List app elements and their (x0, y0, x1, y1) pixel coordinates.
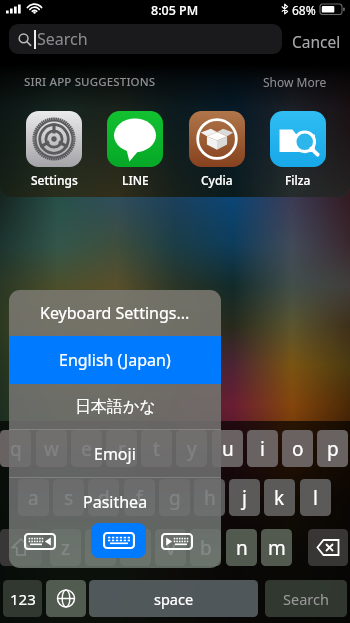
staticText: b (200, 535, 212, 561)
staticText: l (313, 485, 318, 511)
staticText: 68% (292, 2, 316, 18)
staticText: p (327, 436, 339, 462)
button[interactable]: Show More (263, 74, 327, 90)
button[interactable]: q (0, 430, 31, 467)
staticText: f (136, 485, 143, 511)
staticText: g (169, 485, 181, 511)
staticText: Cydia (201, 172, 233, 188)
staticText: i (260, 436, 265, 462)
staticText: Filza (285, 172, 311, 188)
staticText: Settings (31, 172, 78, 188)
staticText: n (236, 535, 248, 561)
button[interactable]: space (89, 580, 258, 617)
button[interactable]: e (71, 430, 102, 467)
button[interactable]: 日本語かな (9, 384, 221, 429)
staticText: Emoji (94, 443, 136, 465)
button[interactable]: English (Japan) (9, 336, 221, 384)
staticText: SIRI APP SUGGESTIONS (24, 74, 156, 90)
button[interactable]: Shift (0, 529, 42, 566)
staticText: e (81, 436, 92, 462)
staticText: m (268, 535, 286, 561)
staticText: j (242, 485, 247, 511)
staticText: k (274, 485, 285, 511)
button[interactable]: w (36, 430, 67, 467)
staticText: o (292, 436, 304, 462)
button[interactable]: Backspace (308, 529, 348, 566)
button[interactable]: Current keyboard (91, 523, 146, 558)
button[interactable]: p (317, 430, 348, 467)
staticText: v (166, 535, 176, 561)
button[interactable]: x (85, 529, 116, 566)
button[interactable]: Next keyboard (46, 580, 86, 617)
staticText: a (28, 485, 39, 511)
button[interactable]: v (155, 529, 186, 566)
staticText: c (131, 535, 141, 561)
button[interactable]: Previous keyboard (22, 525, 58, 558)
staticText: q (10, 436, 22, 462)
button[interactable]: r (106, 430, 137, 467)
button[interactable]: b (190, 529, 221, 566)
button[interactable]: Filza app (264, 111, 332, 188)
button[interactable]: u (212, 430, 243, 467)
staticText: x (95, 535, 106, 561)
button[interactable]: t (141, 430, 172, 467)
button[interactable]: f (124, 479, 155, 516)
button[interactable]: Keyboard Settings... (9, 290, 221, 336)
button[interactable]: g (159, 479, 190, 516)
button[interactable]: Next keyboard (159, 525, 195, 558)
button[interactable]: m (261, 529, 292, 566)
button[interactable]: Cancel (287, 28, 346, 55)
staticText: y (187, 436, 197, 462)
button[interactable]: Settings app (20, 111, 88, 188)
button[interactable]: LINE app (101, 111, 169, 188)
button[interactable]: h (194, 479, 225, 516)
staticText: h (204, 485, 216, 511)
button[interactable]: Search (9, 24, 282, 54)
button[interactable]: n (226, 529, 257, 566)
staticText: u (222, 436, 234, 462)
staticText: 8:05 PM (151, 2, 199, 19)
staticText: Show More (263, 74, 327, 90)
button[interactable]: i (247, 430, 278, 467)
staticText: Search (37, 28, 88, 50)
staticText: 123 (10, 589, 36, 609)
staticText: w (44, 436, 59, 462)
button[interactable]: 123 (3, 580, 42, 617)
staticText: space (154, 589, 194, 609)
button[interactable]: Emoji (9, 430, 221, 477)
staticText: Pasithea (83, 491, 148, 513)
button[interactable]: Search (265, 580, 347, 617)
button[interactable]: a (18, 479, 49, 516)
button[interactable]: l (300, 479, 331, 516)
staticText: r (118, 436, 126, 462)
staticText: s (64, 485, 74, 511)
staticText: English (Japan) (59, 349, 171, 371)
button[interactable]: k (264, 479, 295, 516)
staticText: z (61, 535, 70, 561)
staticText: Search (283, 589, 329, 609)
staticText: Cancel (292, 31, 341, 52)
staticText: t (153, 436, 160, 462)
button[interactable]: Pasithea (9, 478, 221, 525)
button[interactable]: c (120, 529, 151, 566)
button[interactable]: y (176, 430, 207, 467)
button[interactable]: d (88, 479, 119, 516)
button[interactable]: j (229, 479, 260, 516)
staticText: LINE (122, 172, 149, 188)
button[interactable]: s (53, 479, 84, 516)
staticText: Keyboard Settings... (40, 302, 190, 324)
button[interactable]: o (282, 430, 313, 467)
staticText: d (98, 485, 110, 511)
button[interactable]: Cydia app (183, 111, 251, 188)
button[interactable]: z (50, 529, 81, 566)
staticText: 日本語かな (75, 397, 156, 417)
